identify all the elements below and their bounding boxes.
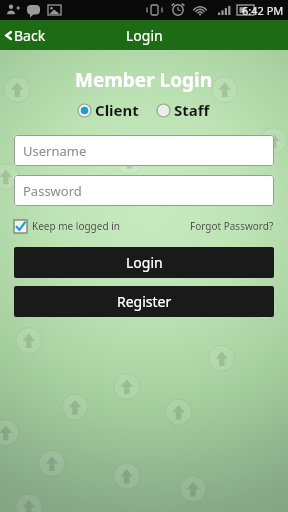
staticText: Keep me logged in [32,219,120,233]
button[interactable]: Register [14,286,274,317]
staticText: Register [117,292,172,311]
staticText: Back [14,26,46,45]
staticText: Password [23,182,82,200]
staticText: Username [23,142,87,160]
button[interactable]: Password [14,175,274,206]
button[interactable]: Keep me logged in [14,217,120,235]
staticText: Login [126,253,163,272]
staticText: Staff [174,100,210,120]
button[interactable]: Username [14,135,274,166]
staticText: Client [95,100,139,120]
staticText: Login [126,26,163,45]
staticText: 6:42 PM [242,3,284,18]
button[interactable]: Login [14,247,274,278]
button[interactable]: Staff [155,98,212,122]
button[interactable]: Forgot Password? [190,217,274,235]
button[interactable]: Back [0,20,58,50]
staticText: Member Login [75,67,213,93]
button[interactable]: Client [76,98,141,122]
